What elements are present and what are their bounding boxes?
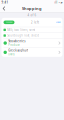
staticText: 4 of 6 (27, 13, 36, 17)
staticText: 2 left (31, 21, 39, 24)
button[interactable]: Back (1, 5, 7, 12)
staticText: 9:41 (2, 1, 9, 4)
staticText: Add Item (55, 21, 60, 23)
staticText: Dairy (8, 52, 14, 56)
button[interactable]: Greek yoghurt (1, 48, 62, 57)
button[interactable]: Strawberries (1, 39, 62, 48)
staticText: Sourdough loaf, sliced (7, 34, 39, 37)
button[interactable]: Milk, two litres, semi (1, 27, 62, 33)
staticText: Produce (8, 43, 20, 47)
staticText: Greek yoghurt (8, 49, 28, 52)
button[interactable]: Sourdough loaf, sliced (1, 33, 62, 38)
staticText: Strawberries (8, 39, 25, 43)
staticText: Shopping (5, 21, 12, 23)
button[interactable]: Add Item (55, 21, 60, 23)
staticText: ıll ⌁▰ (54, 1, 62, 4)
staticText: Milk, two litres, semi (7, 28, 35, 32)
button[interactable]: Shopping (3, 21, 14, 24)
staticText: Shopping (22, 6, 42, 11)
